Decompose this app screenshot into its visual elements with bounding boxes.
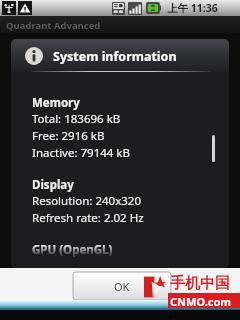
staticText: System information	[53, 48, 177, 65]
staticText: Inactive: 79144 kB	[32, 145, 130, 161]
staticText: 手机中国	[170, 274, 230, 293]
staticText: Resolution: 240x320	[32, 193, 141, 209]
other: System information dialog	[11, 39, 229, 268]
staticText: Refresh rate: 2.02 Hz	[32, 210, 144, 226]
staticText: Total: 183696 kB	[32, 111, 121, 127]
button[interactable]: OK	[73, 272, 171, 300]
staticText: Free: 2916 kB	[32, 128, 105, 144]
staticText: Display	[32, 177, 74, 193]
staticText: GPU (OpenGL)	[32, 242, 113, 258]
staticText: CNMO.com	[170, 294, 232, 309]
staticText: 上午 11:36	[167, 1, 218, 15]
staticText: Memory	[32, 95, 80, 111]
staticText: OK	[114, 279, 130, 294]
staticText: Quadrant Advanced	[6, 19, 101, 32]
